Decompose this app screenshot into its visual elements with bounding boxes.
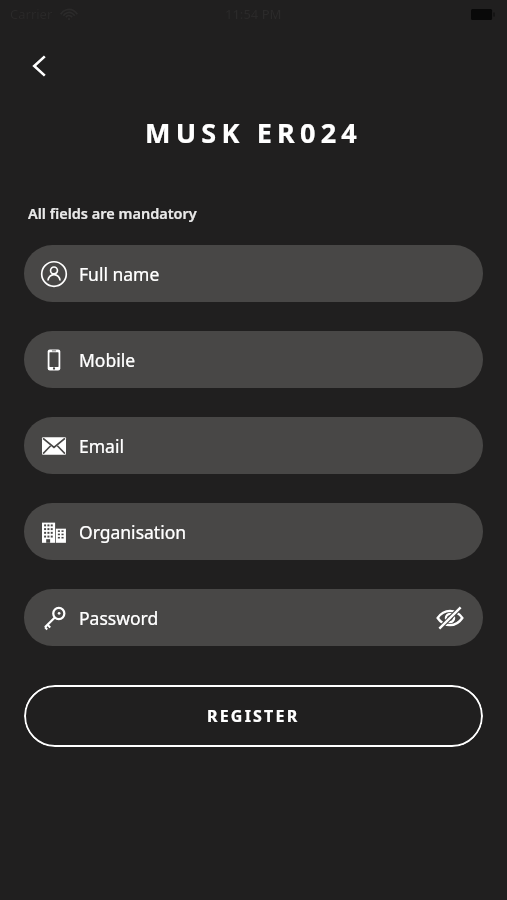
button[interactable]: Mobile xyxy=(24,331,483,388)
button[interactable]: Back xyxy=(14,40,66,92)
button[interactable]: REGISTER xyxy=(24,685,483,747)
staticText: Password xyxy=(79,606,159,630)
button[interactable]: Password xyxy=(24,589,483,646)
button[interactable]: Show password xyxy=(427,595,473,641)
staticText: Mobile xyxy=(79,348,136,372)
button[interactable]: Full name xyxy=(24,245,483,302)
staticText: All fields are mandatory xyxy=(28,203,197,223)
staticText: Organisation xyxy=(79,520,187,544)
staticText: REGISTER xyxy=(207,705,300,727)
staticText: Full name xyxy=(79,262,160,286)
button[interactable]: Organisation xyxy=(24,503,483,560)
staticText: MUSK ER024 xyxy=(0,114,507,151)
button[interactable]: Email xyxy=(24,417,483,474)
staticText: Email xyxy=(79,434,124,458)
